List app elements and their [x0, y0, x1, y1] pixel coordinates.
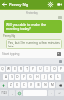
- staticText: X: [16, 83, 18, 87]
- button[interactable]: H: [34, 74, 40, 80]
- staticText: M: [51, 83, 54, 87]
- staticText: A: [5, 75, 7, 79]
- staticText: Will you able to make the meeting today?: [6, 22, 60, 31]
- staticText: P: [60, 67, 62, 71]
- button[interactable]: R: [18, 66, 23, 72]
- button[interactable]: Z: [8, 82, 13, 88]
- staticText: L: [57, 75, 59, 79]
- button[interactable]: Start typing: [2, 52, 56, 56]
- button[interactable]: A: [3, 74, 8, 80]
- staticText: B: [37, 83, 40, 87]
- button[interactable]: Will you able to make the meeting today?: [4, 20, 62, 33]
- button[interactable]: Y: [30, 66, 36, 72]
- staticText: Penny Ng: [9, 2, 29, 8]
- staticText: I: [46, 67, 48, 71]
- button[interactable]: Q: [0, 66, 5, 72]
- button[interactable]: M: [49, 82, 55, 88]
- button[interactable]: Backspace: [56, 82, 64, 88]
- staticText: V: [30, 83, 32, 87]
- button[interactable]: J: [41, 74, 47, 80]
- staticText: ,: [12, 91, 13, 95]
- staticText: T: [26, 67, 28, 71]
- staticText: F: [23, 75, 25, 79]
- staticText: Start typing: [2, 52, 20, 56]
- button[interactable]: V: [28, 82, 34, 88]
- button[interactable]: E: [12, 66, 17, 72]
- staticText: ?123: [1, 91, 7, 95]
- staticText: J: [44, 75, 45, 79]
- staticText: E: [14, 67, 16, 71]
- staticText: O: [53, 67, 56, 71]
- button[interactable]: Attach: [56, 51, 62, 57]
- staticText: R: [20, 67, 22, 71]
- staticText: W: [7, 67, 10, 71]
- staticText: Yes, but I'm running a few minutes late: [8, 41, 60, 47]
- button[interactable]: N: [42, 82, 48, 88]
- button[interactable]: Yes, but I'm running a few minutes late: [6, 39, 62, 49]
- button[interactable]: X: [14, 82, 20, 88]
- button[interactable]: S: [9, 74, 14, 80]
- staticText: C: [23, 83, 25, 87]
- staticText: Y: [32, 67, 34, 71]
- button[interactable]: P: [58, 66, 64, 72]
- staticText: ↵: [58, 92, 61, 95]
- button[interactable]: D: [15, 74, 20, 80]
- staticText: S: [11, 75, 13, 79]
- staticText: U: [39, 67, 42, 71]
- staticText: .: [51, 91, 52, 95]
- button[interactable]: Video call: [55, 0, 64, 9]
- staticText: D: [16, 75, 19, 79]
- staticText: K: [50, 75, 52, 79]
- button[interactable]: Settings: [46, 0, 55, 9]
- button[interactable]: Shift: [0, 82, 7, 88]
- staticText: N: [44, 83, 47, 87]
- button[interactable]: L: [55, 74, 61, 80]
- button[interactable]: Back: [0, 0, 9, 9]
- button[interactable]: K: [48, 74, 54, 80]
- staticText: Yesterday: [26, 11, 38, 15]
- button[interactable]: U: [37, 66, 43, 72]
- staticText: Z: [10, 83, 12, 87]
- button[interactable]: ?123: [0, 90, 8, 96]
- button[interactable]: I: [44, 66, 50, 72]
- staticText: G: [29, 75, 32, 79]
- button[interactable]: Penny Ng: [9, 2, 46, 8]
- button[interactable]: F: [21, 74, 26, 80]
- button[interactable]: O: [51, 66, 57, 72]
- button[interactable]: G: [27, 74, 33, 80]
- button[interactable]: [0, 58, 64, 64]
- staticText: Q: [1, 67, 4, 71]
- staticText: H: [36, 75, 39, 79]
- button[interactable]: Emoji: [16, 90, 22, 96]
- button[interactable]: C: [21, 82, 27, 88]
- button[interactable]: T: [24, 66, 29, 72]
- button[interactable]: ↵: [55, 90, 64, 96]
- button[interactable]: W: [6, 66, 11, 72]
- button[interactable]: B: [35, 82, 41, 88]
- button[interactable]: ,: [9, 90, 15, 96]
- staticText: Penny Ng: [3, 34, 16, 38]
